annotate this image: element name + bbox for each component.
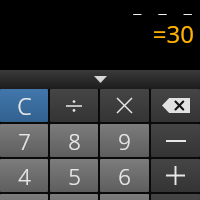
staticText: 9 [118, 126, 131, 156]
button[interactable]: C [0, 89, 48, 122]
button[interactable]: Backspace [151, 89, 200, 122]
staticText: 8 [68, 126, 81, 156]
button[interactable]: Collapse keypad [0, 70, 200, 89]
button[interactable]: 9 [100, 124, 149, 157]
button[interactable]: Plus [151, 159, 200, 192]
button[interactable]: 5 [50, 159, 98, 192]
button[interactable]: Minus [151, 124, 200, 157]
staticText: 4 [18, 161, 31, 191]
button[interactable]: 7 [0, 124, 48, 157]
button[interactable]: 8 [50, 124, 98, 157]
staticText: =30 [152, 17, 194, 50]
button[interactable]: Divide [50, 89, 98, 122]
button[interactable]: Multiply [100, 89, 149, 122]
staticText: 5 [68, 161, 81, 191]
button[interactable]: 6 [100, 159, 149, 192]
staticText: 6 [118, 161, 131, 191]
button[interactable]: 4 [0, 159, 48, 192]
staticText: 7 [18, 126, 31, 156]
staticText: C [17, 90, 32, 121]
staticText: 5+5×5 [131, 6, 194, 15]
